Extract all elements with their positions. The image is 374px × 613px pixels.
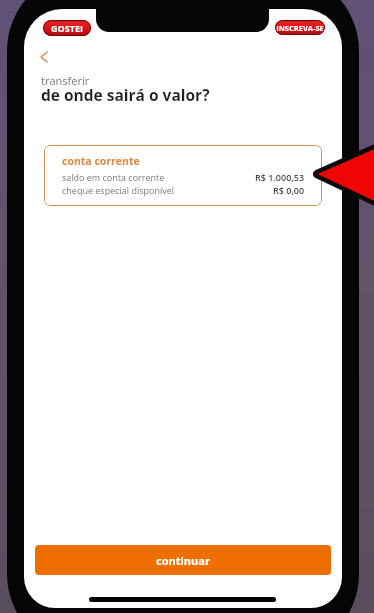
staticText: continuar	[156, 553, 210, 568]
staticText: de onde sairá o valor?	[41, 84, 210, 105]
staticText: cheque especial disponível	[62, 184, 174, 196]
button[interactable]: Voltar	[32, 45, 56, 69]
staticText: INSCREVA-SE	[276, 23, 324, 33]
button[interactable]: GOSTEI	[43, 20, 91, 36]
button[interactable]: INSCREVA-SE	[275, 20, 325, 35]
staticText: conta corrente	[62, 154, 140, 168]
button[interactable]: conta corrente	[44, 145, 322, 206]
staticText: saldo em conta corrente	[62, 171, 165, 183]
staticText: R$ 0,00	[273, 184, 305, 196]
button[interactable]: continuar	[35, 545, 331, 575]
staticText: transferir	[41, 73, 90, 88]
staticText: GOSTEI	[51, 22, 83, 34]
staticText: R$ 1.000,53	[255, 171, 305, 183]
